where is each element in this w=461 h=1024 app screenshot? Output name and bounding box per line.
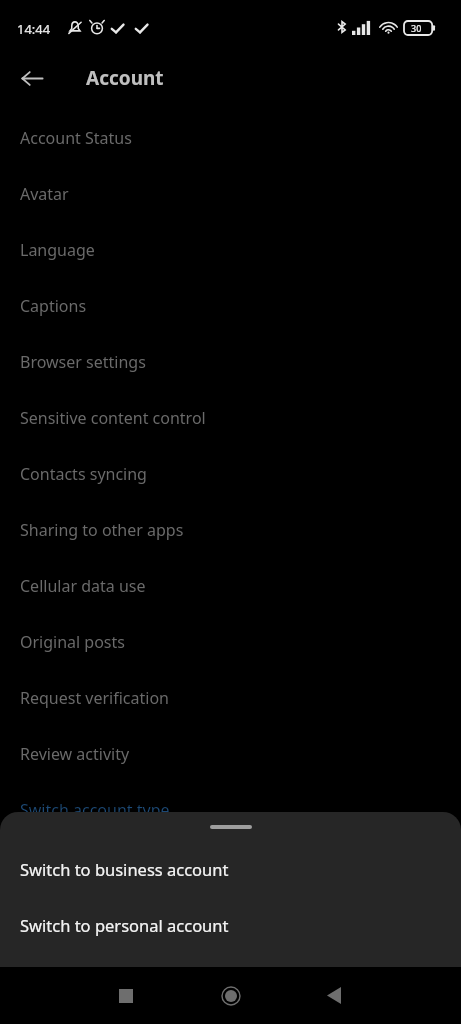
staticText: Review activity: [20, 743, 130, 765]
staticText: Account Status: [20, 127, 132, 149]
staticText: Language: [20, 239, 95, 261]
staticText: Sensitive content control: [20, 407, 206, 429]
staticText: 30: [411, 22, 422, 34]
button[interactable]: Cellular data use: [0, 558, 461, 614]
button[interactable]: Back: [10, 56, 54, 100]
button[interactable]: Account Status: [0, 110, 461, 166]
staticText: Request verification: [20, 687, 169, 709]
staticText: Captions: [20, 295, 87, 317]
staticText: Switch account type: [20, 799, 170, 821]
button[interactable]: Home: [205, 967, 257, 1024]
button[interactable]: Original posts: [0, 614, 461, 670]
staticText: Sharing to other apps: [20, 519, 184, 541]
staticText: Switch to personal account: [20, 914, 229, 936]
button[interactable]: Recent apps: [100, 967, 152, 1024]
staticText: Browser settings: [20, 351, 146, 373]
button[interactable]: Captions: [0, 278, 461, 334]
staticText: Switch to business account: [20, 858, 229, 880]
button[interactable]: Request verification: [0, 670, 461, 726]
staticText: Avatar: [20, 183, 69, 205]
button[interactable]: Avatar: [0, 166, 461, 222]
button[interactable]: Contacts syncing: [0, 446, 461, 502]
button[interactable]: Switch account type: [0, 782, 461, 838]
button[interactable]: Browser settings: [0, 334, 461, 390]
staticText: 14:44: [17, 20, 51, 38]
staticText: Account: [86, 65, 164, 91]
staticText: Contacts syncing: [20, 463, 147, 485]
button[interactable]: Switch to business account: [0, 841, 461, 897]
button[interactable]: Review activity: [0, 726, 461, 782]
button[interactable]: Switch to personal account: [0, 897, 461, 953]
button[interactable]: Language: [0, 222, 461, 278]
staticText: Cellular data use: [20, 575, 146, 597]
button[interactable]: Sensitive content control: [0, 390, 461, 446]
staticText: Original posts: [20, 631, 125, 653]
button[interactable]: Sharing to other apps: [0, 502, 461, 558]
button[interactable]: Back: [308, 967, 360, 1024]
